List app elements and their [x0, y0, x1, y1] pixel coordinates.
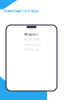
staticText: Charlie list [24, 48, 39, 51]
staticText: Download the app [3, 8, 39, 13]
staticText: Messages [24, 33, 37, 36]
staticText: Alpha team [24, 38, 39, 41]
staticText: Bravo group [24, 43, 41, 46]
